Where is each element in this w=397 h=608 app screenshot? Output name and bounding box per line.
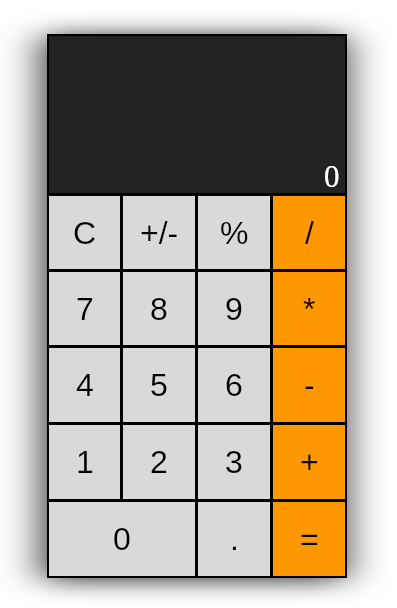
staticText: 5 — [150, 367, 168, 403]
staticText: 7 — [76, 291, 94, 327]
staticText: - — [304, 367, 315, 403]
button[interactable]: 2 — [123, 425, 195, 499]
staticText: % — [220, 215, 249, 251]
button[interactable]: + — [273, 425, 345, 499]
button[interactable]: . — [198, 502, 270, 576]
staticText: + — [300, 444, 319, 480]
button[interactable]: 1 — [49, 425, 120, 499]
button[interactable]: * — [273, 272, 345, 345]
staticText: +/- — [140, 215, 179, 251]
staticText: 8 — [150, 291, 168, 327]
button[interactable]: 7 — [49, 272, 120, 345]
staticText: 0 — [324, 159, 340, 193]
staticText: 2 — [150, 444, 168, 480]
button[interactable]: % — [198, 196, 270, 269]
button[interactable]: 3 — [198, 425, 270, 499]
staticText: 4 — [76, 367, 94, 403]
button[interactable]: 5 — [123, 348, 195, 422]
button[interactable]: - — [273, 348, 345, 422]
button[interactable]: C — [49, 196, 120, 269]
staticText: . — [230, 521, 239, 557]
button[interactable]: 4 — [49, 348, 120, 422]
button[interactable]: / — [273, 196, 345, 269]
button[interactable]: 8 — [123, 272, 195, 345]
staticText: 0 — [113, 521, 131, 557]
staticText: 6 — [225, 367, 243, 403]
staticText: 1 — [76, 444, 94, 480]
button[interactable]: 0 — [49, 502, 195, 576]
button[interactable]: +/- — [123, 196, 195, 269]
staticText: / — [305, 215, 314, 251]
staticText: 3 — [225, 444, 243, 480]
button[interactable]: 6 — [198, 348, 270, 422]
staticText: * — [303, 291, 316, 327]
staticText: 9 — [225, 291, 243, 327]
button[interactable]: = — [273, 502, 345, 576]
staticText: = — [300, 521, 319, 557]
button[interactable]: 9 — [198, 272, 270, 345]
staticText: C — [73, 215, 97, 251]
